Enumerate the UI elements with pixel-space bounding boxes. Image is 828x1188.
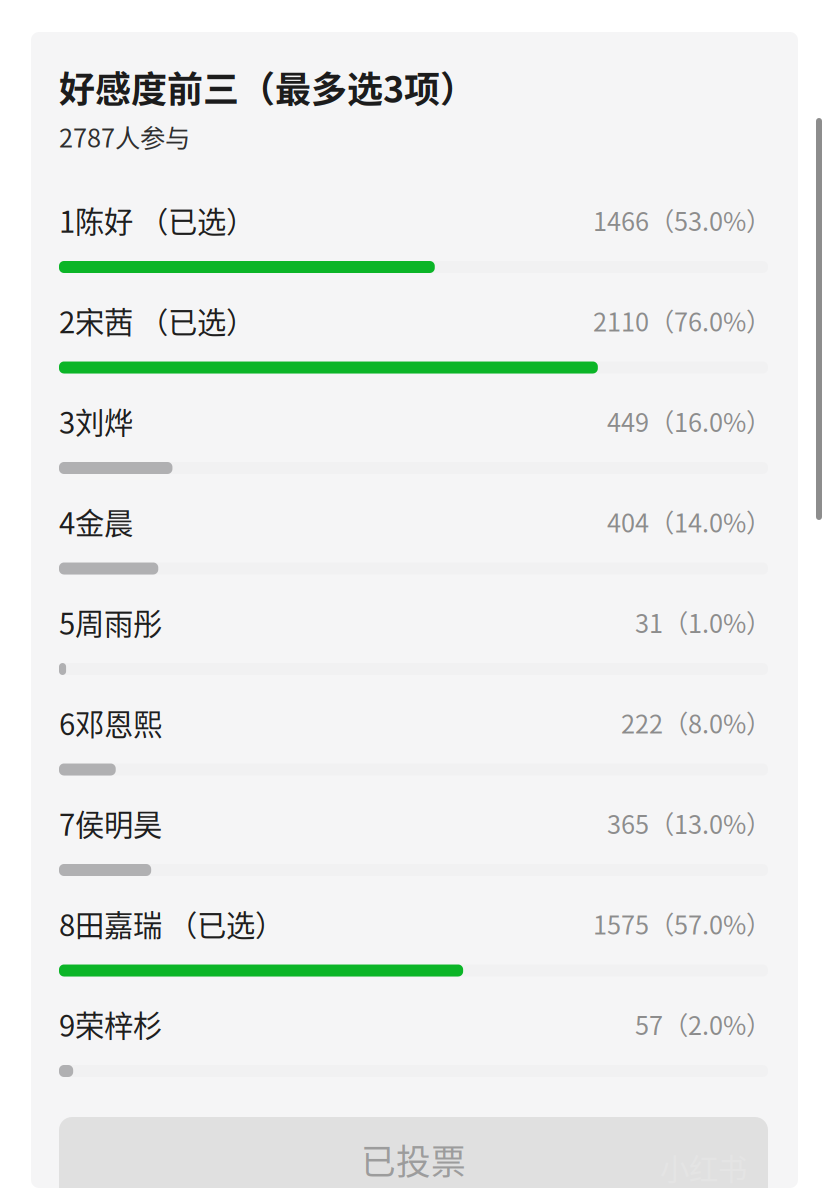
staticText: 404（14.0%） bbox=[607, 503, 771, 540]
button[interactable]: 4金晨 bbox=[59, 504, 768, 570]
staticText: 7侯明昊 bbox=[59, 802, 162, 844]
staticText: 8田嘉瑞 （已选） bbox=[59, 902, 284, 945]
staticText: 57（2.0%） bbox=[635, 1006, 771, 1042]
button[interactable]: 9荣梓杉 bbox=[59, 1007, 768, 1073]
staticText: 2110（76.0%） bbox=[593, 302, 771, 339]
staticText: 6邓恩熙 bbox=[59, 701, 162, 744]
staticText: 已投票 bbox=[361, 1134, 466, 1185]
staticText: 3刘烨 bbox=[59, 400, 133, 442]
button[interactable]: 8田嘉瑞 （已选） bbox=[59, 906, 768, 972]
staticText: 4金晨 bbox=[59, 500, 133, 543]
staticText: 1陈好 （已选） bbox=[59, 199, 255, 241]
staticText: 449（16.0%） bbox=[607, 403, 771, 439]
staticText: 2宋茜 （已选） bbox=[59, 299, 255, 342]
staticText: 222（8.0%） bbox=[621, 704, 771, 741]
button[interactable]: 7侯明昊 bbox=[59, 806, 768, 872]
button[interactable]: 已投票 bbox=[59, 1117, 768, 1188]
staticText: 2787人参与 bbox=[59, 118, 190, 155]
button[interactable]: 3刘烨 bbox=[59, 404, 768, 470]
staticText: 1466（53.0%） bbox=[593, 202, 771, 238]
staticText: 1575（57.0%） bbox=[593, 905, 771, 942]
staticText: 31（1.0%） bbox=[635, 604, 771, 640]
staticText: 5周雨彤 bbox=[59, 601, 162, 643]
staticText: 9荣梓杉 bbox=[59, 1003, 162, 1045]
button[interactable]: 5周雨彤 bbox=[59, 605, 768, 671]
staticText: 好感度前三（最多选3项） bbox=[59, 61, 476, 113]
button[interactable]: 1陈好 （已选） bbox=[59, 203, 768, 269]
button[interactable]: 2宋茜 （已选） bbox=[59, 303, 768, 369]
button[interactable]: 6邓恩熙 bbox=[59, 705, 768, 771]
staticText: 365（13.0%） bbox=[607, 805, 771, 841]
